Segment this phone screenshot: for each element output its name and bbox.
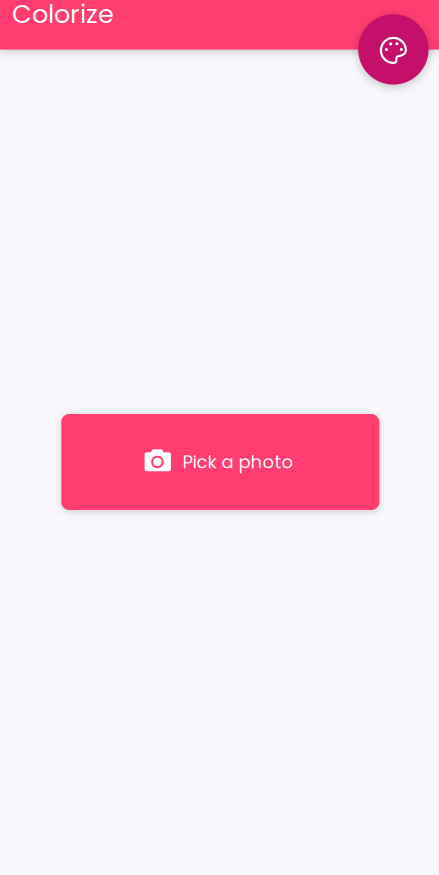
button[interactable]: Colorize photo bbox=[358, 14, 429, 85]
staticText: Colorize bbox=[12, 0, 114, 32]
staticText: Pick a photo bbox=[182, 449, 293, 475]
button[interactable]: Pick a photo bbox=[60, 414, 378, 510]
